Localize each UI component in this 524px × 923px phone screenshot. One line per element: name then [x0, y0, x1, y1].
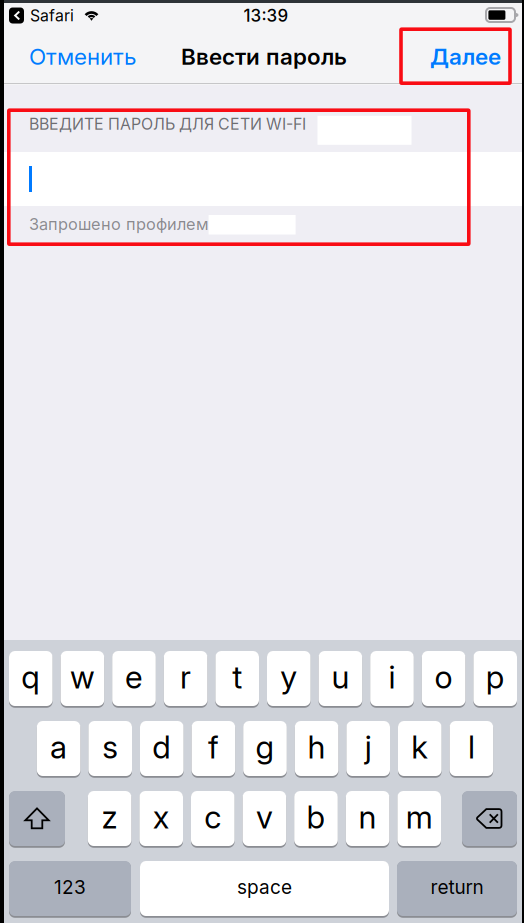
button[interactable]: k — [398, 721, 442, 776]
staticText: Safari — [30, 6, 74, 25]
staticText: g — [255, 728, 274, 766]
button[interactable]: Shift — [9, 791, 65, 846]
staticText: z — [102, 798, 118, 836]
staticText: Отменить — [29, 43, 136, 70]
button[interactable]: t — [215, 651, 259, 706]
button[interactable]: i — [370, 651, 414, 706]
staticText: e — [125, 658, 143, 696]
button[interactable]: u — [319, 651, 362, 706]
staticText: x — [153, 798, 170, 836]
staticText: i — [388, 658, 395, 696]
staticText: 13:39 — [243, 5, 288, 26]
staticText: u — [331, 658, 349, 696]
staticText: b — [306, 798, 325, 836]
button[interactable]: z — [88, 791, 131, 846]
button[interactable]: return — [397, 861, 517, 916]
staticText: f — [208, 728, 219, 766]
button[interactable]: x — [139, 791, 183, 846]
button[interactable]: c — [191, 791, 235, 846]
staticText: c — [204, 798, 221, 836]
button[interactable]: j — [346, 721, 390, 776]
staticText: d — [152, 728, 171, 766]
staticText: y — [280, 658, 297, 696]
staticText: n — [359, 798, 377, 836]
staticText: s — [102, 728, 118, 766]
button[interactable]: e — [112, 651, 156, 706]
staticText: l — [468, 728, 475, 766]
button[interactable]: a — [37, 721, 80, 776]
staticText: Ввести пароль — [181, 43, 347, 70]
button[interactable]: y — [267, 651, 311, 706]
button[interactable]: d — [140, 721, 184, 776]
staticText: m — [406, 798, 433, 836]
button[interactable]: l — [450, 721, 493, 776]
button[interactable]: Отменить — [29, 28, 289, 85]
button[interactable]: q — [9, 651, 53, 706]
button[interactable]: f — [192, 721, 235, 776]
button[interactable]: Далее — [401, 28, 501, 85]
button[interactable]: m — [397, 791, 441, 846]
button[interactable]: o — [422, 651, 465, 706]
button[interactable]: space — [140, 861, 389, 916]
staticText: j — [365, 728, 372, 766]
button[interactable]: b — [294, 791, 338, 846]
staticText: q — [21, 658, 40, 696]
staticText: return — [430, 875, 483, 898]
staticText: w — [70, 658, 95, 696]
button[interactable]: 123 — [9, 861, 131, 916]
staticText: h — [308, 728, 326, 766]
staticText: Запрошено профилем — [29, 214, 209, 234]
staticText: ВВЕДИТЕ ПАРОЛЬ ДЛЯ СЕТИ WI-FI — [29, 114, 306, 134]
staticText: o — [435, 658, 453, 696]
button[interactable]: s — [88, 721, 132, 776]
staticText: r — [180, 658, 191, 696]
staticText: k — [411, 728, 428, 766]
button[interactable]: n — [346, 791, 389, 846]
staticText: v — [256, 798, 273, 836]
button[interactable]: r — [164, 651, 207, 706]
button[interactable]: Delete — [462, 791, 517, 846]
staticText: t — [232, 658, 242, 696]
staticText: p — [486, 658, 505, 696]
button[interactable]: w — [61, 651, 104, 706]
button[interactable]: h — [295, 721, 338, 776]
staticText: 123 — [54, 875, 86, 898]
staticText: Далее — [430, 43, 501, 70]
staticText: a — [50, 728, 67, 766]
staticText: space — [237, 875, 292, 898]
button[interactable]: p — [473, 651, 517, 706]
button[interactable]: v — [243, 791, 286, 846]
button[interactable]: g — [243, 721, 287, 776]
